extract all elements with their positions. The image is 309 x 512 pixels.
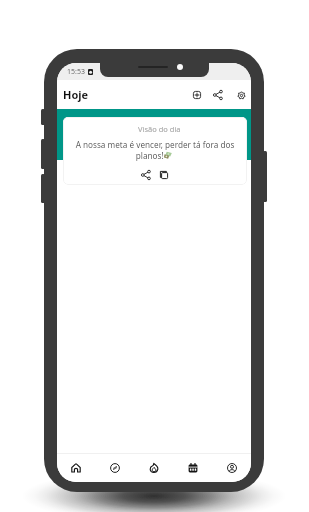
staticText: Hoje <box>63 87 89 102</box>
button[interactable]: Adicionar <box>187 85 207 105</box>
staticText: A nossa meta é vencer, perder tá fora do… <box>71 139 239 161</box>
staticText: Visão do dia <box>138 124 181 134</box>
button[interactable]: Copiar frase <box>156 167 172 183</box>
button[interactable]: Explorar <box>95 453 134 482</box>
button[interactable]: Perfil <box>212 453 251 482</box>
button[interactable]: Início <box>57 453 95 482</box>
button[interactable]: Visão do dia <box>63 117 247 185</box>
button[interactable]: Agenda <box>173 453 212 482</box>
button[interactable]: Hábitos <box>134 453 173 482</box>
button[interactable]: Compartilhar <box>208 85 228 105</box>
button[interactable]: Compartilhar frase <box>138 167 154 183</box>
staticText: 15:53 <box>67 67 85 77</box>
button[interactable]: Configurações <box>231 85 251 105</box>
